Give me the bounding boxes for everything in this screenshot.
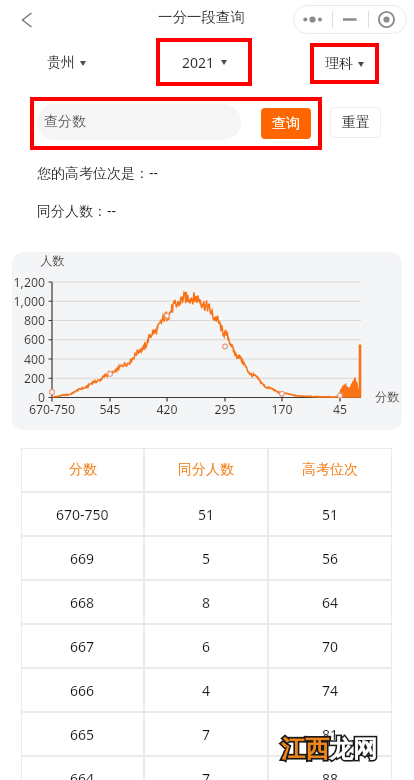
button[interactable]: 理科 (325, 55, 364, 73)
button[interactable]: 2021 (182, 53, 227, 72)
staticText: 664 (70, 769, 95, 780)
staticText: 8 (202, 593, 211, 612)
staticText: 64 (322, 593, 339, 612)
button[interactable]: 查询 (261, 108, 311, 139)
staticText: 51 (322, 505, 339, 524)
staticText: 重置 (342, 114, 370, 132)
staticText: 670-750 (56, 505, 109, 524)
staticText: 56 (322, 549, 339, 568)
staticText: 545 (80, 401, 140, 418)
staticText: 670-750 (22, 401, 82, 418)
staticText: 420 (137, 401, 197, 418)
button[interactable]: Back (13, 6, 41, 34)
button[interactable]: More (293, 5, 332, 34)
staticText: 2021 (182, 53, 215, 72)
staticText: 4 (202, 681, 211, 700)
staticText: 45 (310, 401, 370, 418)
staticText: 分数 (69, 461, 97, 479)
staticText: 1,000 (12, 293, 45, 310)
staticText: 81 (322, 725, 339, 744)
staticText: 669 (70, 549, 95, 568)
staticText: 666 (70, 681, 95, 700)
staticText: 800 (12, 312, 45, 329)
staticText: 贵州 (47, 54, 75, 72)
staticText: 295 (195, 401, 255, 418)
staticText: 1,200 (12, 274, 45, 291)
staticText: 理科 (325, 55, 353, 73)
staticText: 您的高考位次是：-- (37, 163, 159, 182)
staticText: 5 (202, 549, 211, 568)
staticText: 667 (70, 637, 95, 656)
staticText: 200 (12, 370, 45, 387)
staticText: 70 (322, 637, 339, 656)
button[interactable]: 查分数 (37, 104, 241, 140)
button[interactable]: 高考位次 (268, 448, 392, 492)
staticText: 查分数 (44, 113, 86, 131)
staticText: 一分一段查询 (158, 8, 245, 26)
staticText: 170 (252, 401, 312, 418)
staticText: 668 (70, 593, 95, 612)
staticText: 6 (202, 637, 211, 656)
staticText: 74 (322, 681, 339, 700)
button[interactable]: Close (369, 5, 407, 34)
staticText: 龙网 (329, 734, 377, 764)
staticText: 江西 (281, 734, 329, 764)
staticText: 人数 (40, 253, 65, 268)
staticText: 400 (12, 351, 45, 368)
button[interactable]: 重置 (330, 107, 381, 138)
staticText: 查询 (272, 115, 300, 133)
staticText: 0 (12, 389, 45, 406)
button[interactable]: Minimize (333, 5, 368, 34)
staticText: 7 (202, 725, 211, 744)
staticText: 同分人数 (178, 461, 234, 479)
staticText: 江西龙网 (281, 734, 377, 764)
button[interactable]: 贵州 (47, 54, 86, 72)
staticText: 88 (322, 769, 339, 780)
staticText: 665 (70, 725, 95, 744)
staticText: 同分人数：-- (37, 201, 117, 220)
button[interactable]: 同分人数 (144, 448, 268, 492)
staticText: 高考位次 (302, 461, 358, 479)
button[interactable]: 分数 (21, 448, 144, 492)
staticText: 600 (12, 331, 45, 348)
staticText: 分数 (375, 389, 400, 404)
staticText: 7 (202, 769, 211, 780)
staticText: 51 (198, 505, 215, 524)
